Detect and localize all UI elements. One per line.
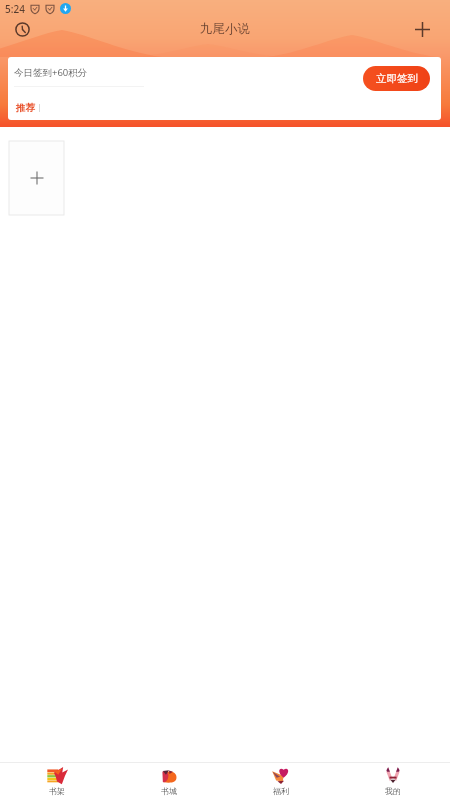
staticText: 今日签到+60积分 [14, 66, 88, 79]
button[interactable]: 推荐 [16, 101, 35, 115]
staticText: 立即签到 [376, 72, 418, 85]
staticText: 福利 [273, 786, 289, 796]
staticText: 5:24 [5, 2, 25, 16]
staticText: 书城 [161, 786, 177, 796]
button[interactable]: 我的 [338, 763, 448, 800]
button[interactable]: Reading history [9, 16, 35, 42]
button[interactable]: Add book [409, 16, 435, 42]
button[interactable]: 立即签到 [363, 66, 430, 91]
button[interactable]: Add book to shelf [9, 141, 64, 215]
button[interactable]: 书架 [2, 763, 112, 800]
staticText: 推荐 [16, 102, 35, 114]
staticText: 书架 [49, 786, 65, 796]
staticText: 我的 [385, 786, 401, 796]
staticText: 九尾小说 [200, 21, 250, 37]
button[interactable]: 福利 [226, 763, 336, 800]
button[interactable]: 书城 [114, 763, 224, 800]
